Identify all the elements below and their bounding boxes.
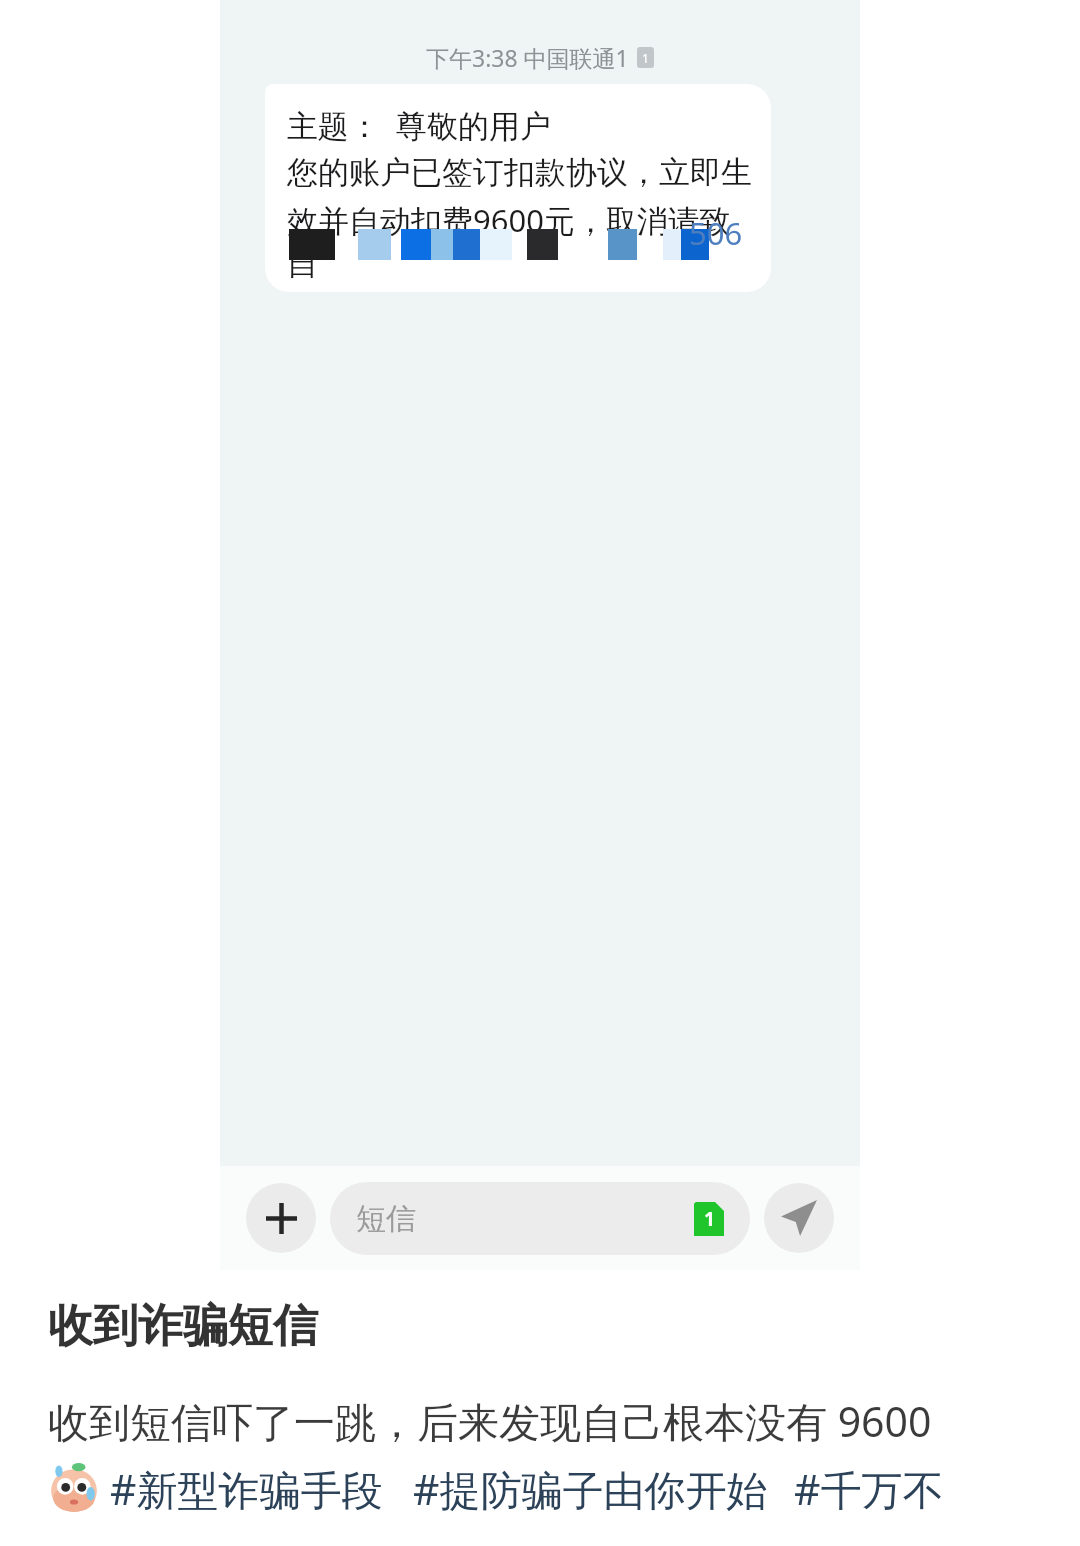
staticText: 1 <box>704 1206 715 1232</box>
staticText: 下午3:38 中国联通1 <box>426 42 629 73</box>
staticText: 收到诈骗短信 <box>48 1298 318 1355</box>
button[interactable]: Send <box>764 1183 834 1253</box>
staticText: 506 <box>689 212 743 254</box>
staticText: 1 <box>642 50 649 66</box>
staticText: 您的账户已签订扣款协议，立即生 <box>287 153 752 192</box>
button[interactable]: #千万不 <box>794 1461 944 1517</box>
staticText: 效并自动扣费9600元，取消请致 <box>287 199 730 241</box>
staticText: 主题： 尊敬的用户 <box>287 104 552 146</box>
button[interactable]: 主题： 尊敬的用户 <box>265 84 771 292</box>
button[interactable]: Add attachment <box>246 1183 316 1253</box>
button[interactable]: #提防骗子由你开始 <box>413 1461 768 1517</box>
staticText: 短信 <box>356 1200 416 1238</box>
staticText: 收到短信吓了一跳，后来发现自己根本没有 9600 <box>48 1393 932 1449</box>
button[interactable]: #新型诈骗手段 <box>110 1461 383 1517</box>
staticText: 自 <box>287 244 318 283</box>
button[interactable]: 短信 <box>330 1182 750 1255</box>
